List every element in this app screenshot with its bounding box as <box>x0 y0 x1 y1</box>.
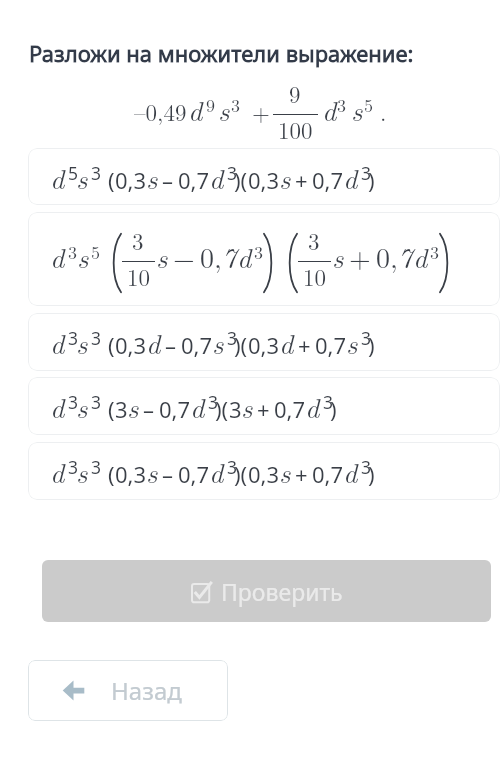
staticText: ) <box>368 330 375 360</box>
staticText: 5 <box>364 92 373 118</box>
staticText: – <box>143 394 155 424</box>
staticText: 0,7 <box>178 459 210 489</box>
staticText: ) <box>368 165 375 195</box>
staticText: d <box>343 157 358 197</box>
staticText: + <box>252 95 270 128</box>
staticText: 3 <box>68 326 79 350</box>
button[interactable]: Проверить <box>42 560 491 622</box>
staticText: 3 <box>323 390 334 414</box>
staticText: s <box>346 322 358 362</box>
staticText: + <box>295 459 308 489</box>
staticText: s <box>77 236 89 276</box>
staticText: 0,7 <box>315 330 347 360</box>
staticText: Разложи на множители выражение: <box>29 38 414 68</box>
staticText: 0,3 <box>115 165 147 195</box>
button[interactable]: Назад <box>28 660 228 721</box>
staticText: )( <box>234 330 248 360</box>
staticText: d <box>305 386 320 426</box>
staticText: + <box>295 165 308 195</box>
button[interactable]: d <box>28 442 500 500</box>
staticText: 0,7 <box>274 394 306 424</box>
staticText: ) <box>368 459 375 489</box>
staticText: Назад <box>111 674 182 707</box>
staticText: d <box>237 236 252 276</box>
staticText: 3 <box>68 239 77 265</box>
button[interactable]: d <box>28 377 500 435</box>
staticText: 3 <box>91 161 102 185</box>
staticText: . <box>380 95 387 128</box>
button[interactable]: d <box>28 148 500 205</box>
staticText: 3 <box>91 326 102 350</box>
staticText: s <box>146 451 158 491</box>
staticText: – <box>165 330 177 360</box>
staticText: 10 <box>303 260 326 293</box>
staticText: s <box>279 157 291 197</box>
staticText: 5 <box>91 239 100 265</box>
staticText: 3 <box>68 455 79 479</box>
staticText: d <box>343 451 358 491</box>
staticText: 3 <box>208 390 219 414</box>
staticText: d <box>413 236 428 276</box>
staticText: ( <box>108 394 115 424</box>
staticText: 3 <box>91 455 102 479</box>
button[interactable]: d <box>28 212 500 306</box>
staticText: – <box>162 459 174 489</box>
staticText: 7 <box>398 236 413 276</box>
staticText: 9 <box>206 92 215 118</box>
staticText: 3 <box>361 455 372 479</box>
staticText: 0,3 <box>248 165 280 195</box>
staticText: s <box>76 451 88 491</box>
staticText: 3 <box>308 224 320 257</box>
staticText: 3 <box>91 390 102 414</box>
staticText: 5 <box>68 161 79 185</box>
staticText: s <box>332 236 344 276</box>
staticText: 0, <box>200 236 222 276</box>
staticText: d <box>50 157 65 197</box>
staticText: d <box>188 89 203 129</box>
staticText: 0, <box>376 236 398 276</box>
staticText: − <box>173 236 195 276</box>
staticText: d <box>279 322 294 362</box>
staticText: 0,3 <box>115 459 147 489</box>
staticText: 3 <box>430 239 439 265</box>
staticText: s <box>76 322 88 362</box>
staticText: s <box>351 89 363 129</box>
button[interactable]: d <box>28 313 500 371</box>
staticText: 7 <box>222 236 237 276</box>
staticText: 0,7 <box>312 165 344 195</box>
staticText: s <box>127 386 139 426</box>
staticText: 0,7 <box>178 165 210 195</box>
staticText: d <box>209 157 224 197</box>
staticText: d <box>50 451 65 491</box>
staticText: 10 <box>127 260 150 293</box>
staticText: d <box>50 236 65 276</box>
staticText: s <box>146 157 158 197</box>
staticText: d <box>50 386 65 426</box>
other: Назад <box>62 679 85 702</box>
staticText: 3 <box>227 161 238 185</box>
staticText: s <box>241 386 253 426</box>
staticText: 9 <box>289 77 301 110</box>
staticText: d <box>322 89 337 129</box>
staticText: 3 <box>361 326 372 350</box>
staticText: 0,3 <box>248 330 280 360</box>
staticText: – <box>162 165 174 195</box>
staticText: )( <box>234 165 248 195</box>
staticText: + <box>349 236 371 276</box>
staticText: )( <box>234 459 248 489</box>
staticText: d <box>209 451 224 491</box>
staticText: 3 <box>68 390 79 414</box>
staticText: 100 <box>278 113 313 146</box>
staticText: 3 <box>337 92 346 118</box>
staticText: + <box>298 330 311 360</box>
staticText: s <box>76 386 88 426</box>
staticText: 0,7 <box>159 394 191 424</box>
staticText: ( <box>108 330 115 360</box>
staticText: 3 <box>231 92 240 118</box>
staticText: ( <box>108 459 115 489</box>
staticText: 3 <box>115 394 128 424</box>
staticText: 3 <box>227 455 238 479</box>
staticText: )( <box>215 394 229 424</box>
staticText: 3 <box>361 161 372 185</box>
staticText: s <box>212 322 224 362</box>
